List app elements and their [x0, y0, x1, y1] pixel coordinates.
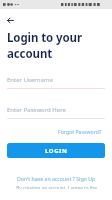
button[interactable]: Enter Username — [0, 76, 112, 89]
button[interactable]: Forgot Password? — [56, 126, 104, 137]
button[interactable]: Enter Password Here — [0, 106, 112, 119]
staticText: LOGIN — [45, 147, 68, 155]
staticText: Login to your account — [7, 30, 112, 62]
button[interactable]: Don't have an account ? Sign Up — [13, 172, 100, 185]
staticText: Enter Password Here — [7, 106, 66, 114]
button[interactable]: LOGIN — [7, 143, 105, 158]
staticText: Enter Username — [7, 76, 53, 84]
button[interactable]: Back — [4, 14, 17, 27]
staticText: By creating an account, I agree to the — [16, 185, 97, 189]
